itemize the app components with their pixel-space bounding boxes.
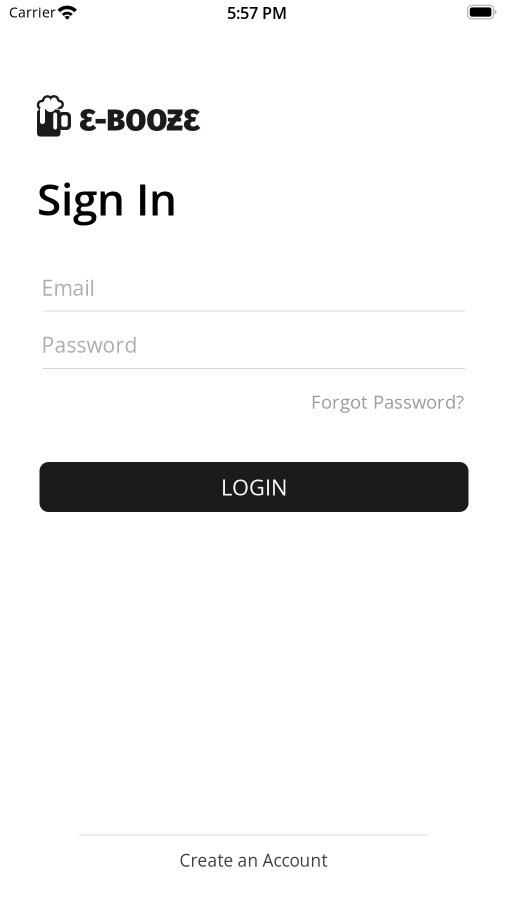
staticText: Ɛ-BOOƵƐ: [79, 102, 200, 138]
staticText: Create an Account: [179, 848, 327, 872]
button[interactable]: Forgot Password?: [39, 389, 464, 414]
staticText: Sign In: [37, 168, 177, 228]
staticText: Email: [41, 273, 94, 302]
button[interactable]: LOGIN: [39, 462, 468, 512]
button[interactable]: Create an Account: [0, 846, 507, 874]
staticText: Carrier: [9, 2, 56, 22]
staticText: Password: [41, 330, 137, 359]
staticText: Forgot Password?: [311, 389, 464, 414]
staticText: LOGIN: [221, 472, 287, 502]
staticText: 5:57 PM: [227, 1, 287, 24]
